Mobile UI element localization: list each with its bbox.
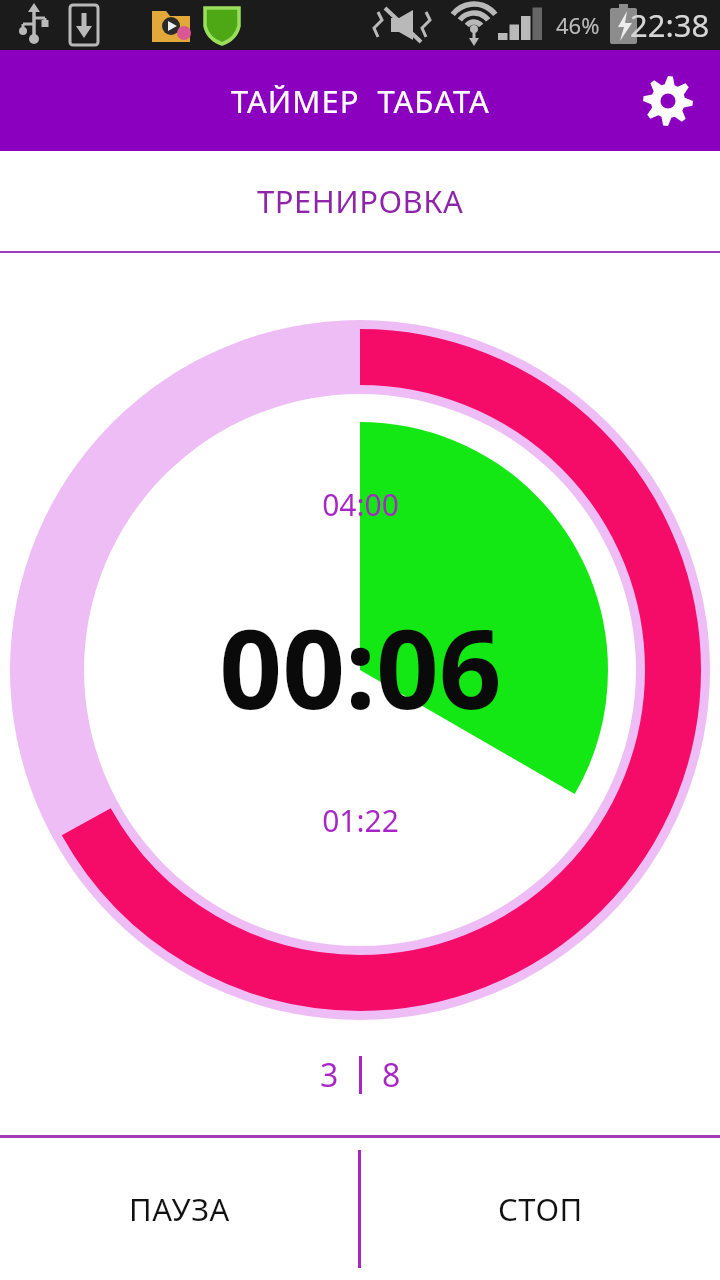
button[interactable]: СТОП — [361, 1138, 720, 1280]
staticText: СТОП — [498, 1188, 583, 1230]
staticText: 00:06 — [219, 591, 502, 741]
button[interactable]: ПАУЗА — [0, 1138, 358, 1280]
staticText: 22:38 — [630, 4, 710, 46]
button[interactable]: Settings — [638, 71, 698, 131]
staticText: 01:22 — [322, 800, 399, 841]
staticText: ПАУЗА — [129, 1188, 230, 1230]
staticText: ТАЙМЕР ТАБАТА — [231, 80, 490, 122]
staticText: 04:00 — [322, 484, 399, 525]
staticText: 3 — [320, 1053, 339, 1097]
staticText: ТРЕНИРОВКА — [257, 180, 464, 222]
staticText: 8 — [382, 1053, 401, 1097]
staticText: 46% — [556, 10, 600, 40]
